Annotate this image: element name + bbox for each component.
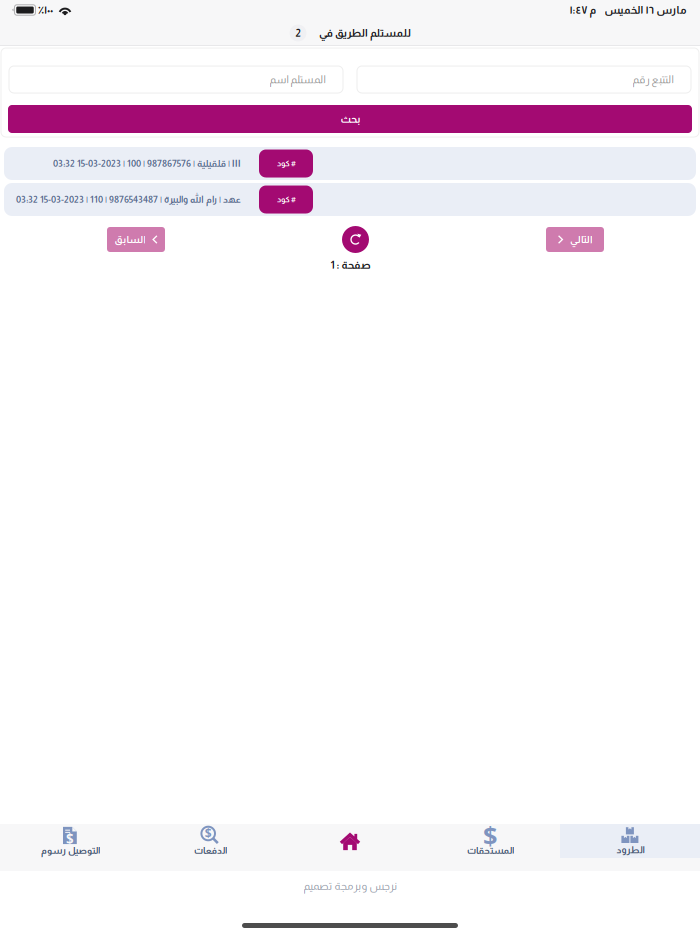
staticText: التالي	[570, 234, 593, 245]
staticText: 2	[295, 27, 300, 39]
staticText: م ١:٤٧	[569, 4, 596, 16]
button[interactable]: تحديث	[342, 226, 369, 253]
staticText: الدفعات	[193, 845, 226, 856]
button[interactable]: التالي	[546, 227, 604, 252]
staticText: المستحقات	[466, 845, 513, 856]
staticText: الطرود	[616, 845, 644, 855]
button[interactable]: الطرود	[560, 824, 700, 858]
staticText: للمستلم الطريق في	[318, 27, 410, 39]
staticText: ٪١٠٠	[38, 4, 53, 16]
staticText: $	[66, 830, 74, 847]
staticText: صفحة : 1	[330, 259, 370, 271]
staticText: # كود	[276, 195, 295, 204]
staticText: ‎03:32 15-03-2023 | 100 | 987867576 | قل…	[53, 158, 241, 169]
staticText: التتبع رقم	[632, 73, 673, 85]
button[interactable]: ‎03:32 15-03-2023 | 100 | 987867576 | قل…	[4, 147, 696, 180]
button[interactable]: $	[0, 824, 140, 858]
staticText: بحث	[340, 113, 360, 125]
button[interactable]: $	[140, 824, 280, 858]
staticText: # كود	[276, 159, 295, 168]
button[interactable]: ‎03:32 15-03-2023 | 110 | 9876543487 | ع…	[4, 183, 696, 216]
staticText: ‎03:32 15-03-2023 | 110 | 9876543487 | ع…	[16, 194, 241, 205]
staticText: مارس ١٦ الخميس	[604, 4, 686, 16]
staticText: $	[483, 818, 497, 852]
staticText: السابق	[114, 234, 146, 245]
staticText: نرجس وبرمجة تصميم	[303, 880, 397, 892]
staticText: $	[205, 825, 212, 841]
staticText: المستلم اسم	[269, 73, 325, 85]
button[interactable]: $	[420, 824, 560, 858]
staticText: التوصيل رسوم	[40, 845, 99, 856]
button[interactable]: بحث	[8, 105, 692, 133]
button[interactable]: السابق	[107, 227, 165, 252]
button[interactable]: الرئيسية	[280, 824, 420, 858]
